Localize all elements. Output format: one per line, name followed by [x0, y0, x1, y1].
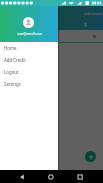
- button[interactable]: [0, 162, 103, 179]
- button[interactable]: [0, 43, 103, 60]
- button[interactable]: Add Credit: [0, 54, 58, 66]
- staticText: Settings: [4, 81, 21, 87]
- button[interactable]: Logout: [0, 66, 58, 78]
- button[interactable]: [0, 111, 103, 128]
- button[interactable]: [0, 60, 103, 77]
- button[interactable]: Home: [0, 42, 58, 54]
- button[interactable]: [0, 145, 103, 162]
- staticText: Add Credit: [4, 57, 26, 63]
- button[interactable]: [0, 77, 103, 94]
- button[interactable]: [0, 94, 103, 111]
- button[interactable]: Profile picture: [23, 17, 34, 28]
- button[interactable]: Settings: [0, 78, 58, 90]
- button[interactable]: Search: [93, 35, 96, 38]
- button[interactable]: Account: [82, 21, 89, 28]
- staticText: user@email.com: [17, 32, 42, 36]
- button[interactable]: Add: [85, 151, 96, 162]
- staticText: add menu: [84, 11, 103, 16]
- staticText: Logout: [4, 69, 19, 75]
- button[interactable]: [0, 128, 103, 145]
- staticText: Home: [4, 45, 17, 51]
